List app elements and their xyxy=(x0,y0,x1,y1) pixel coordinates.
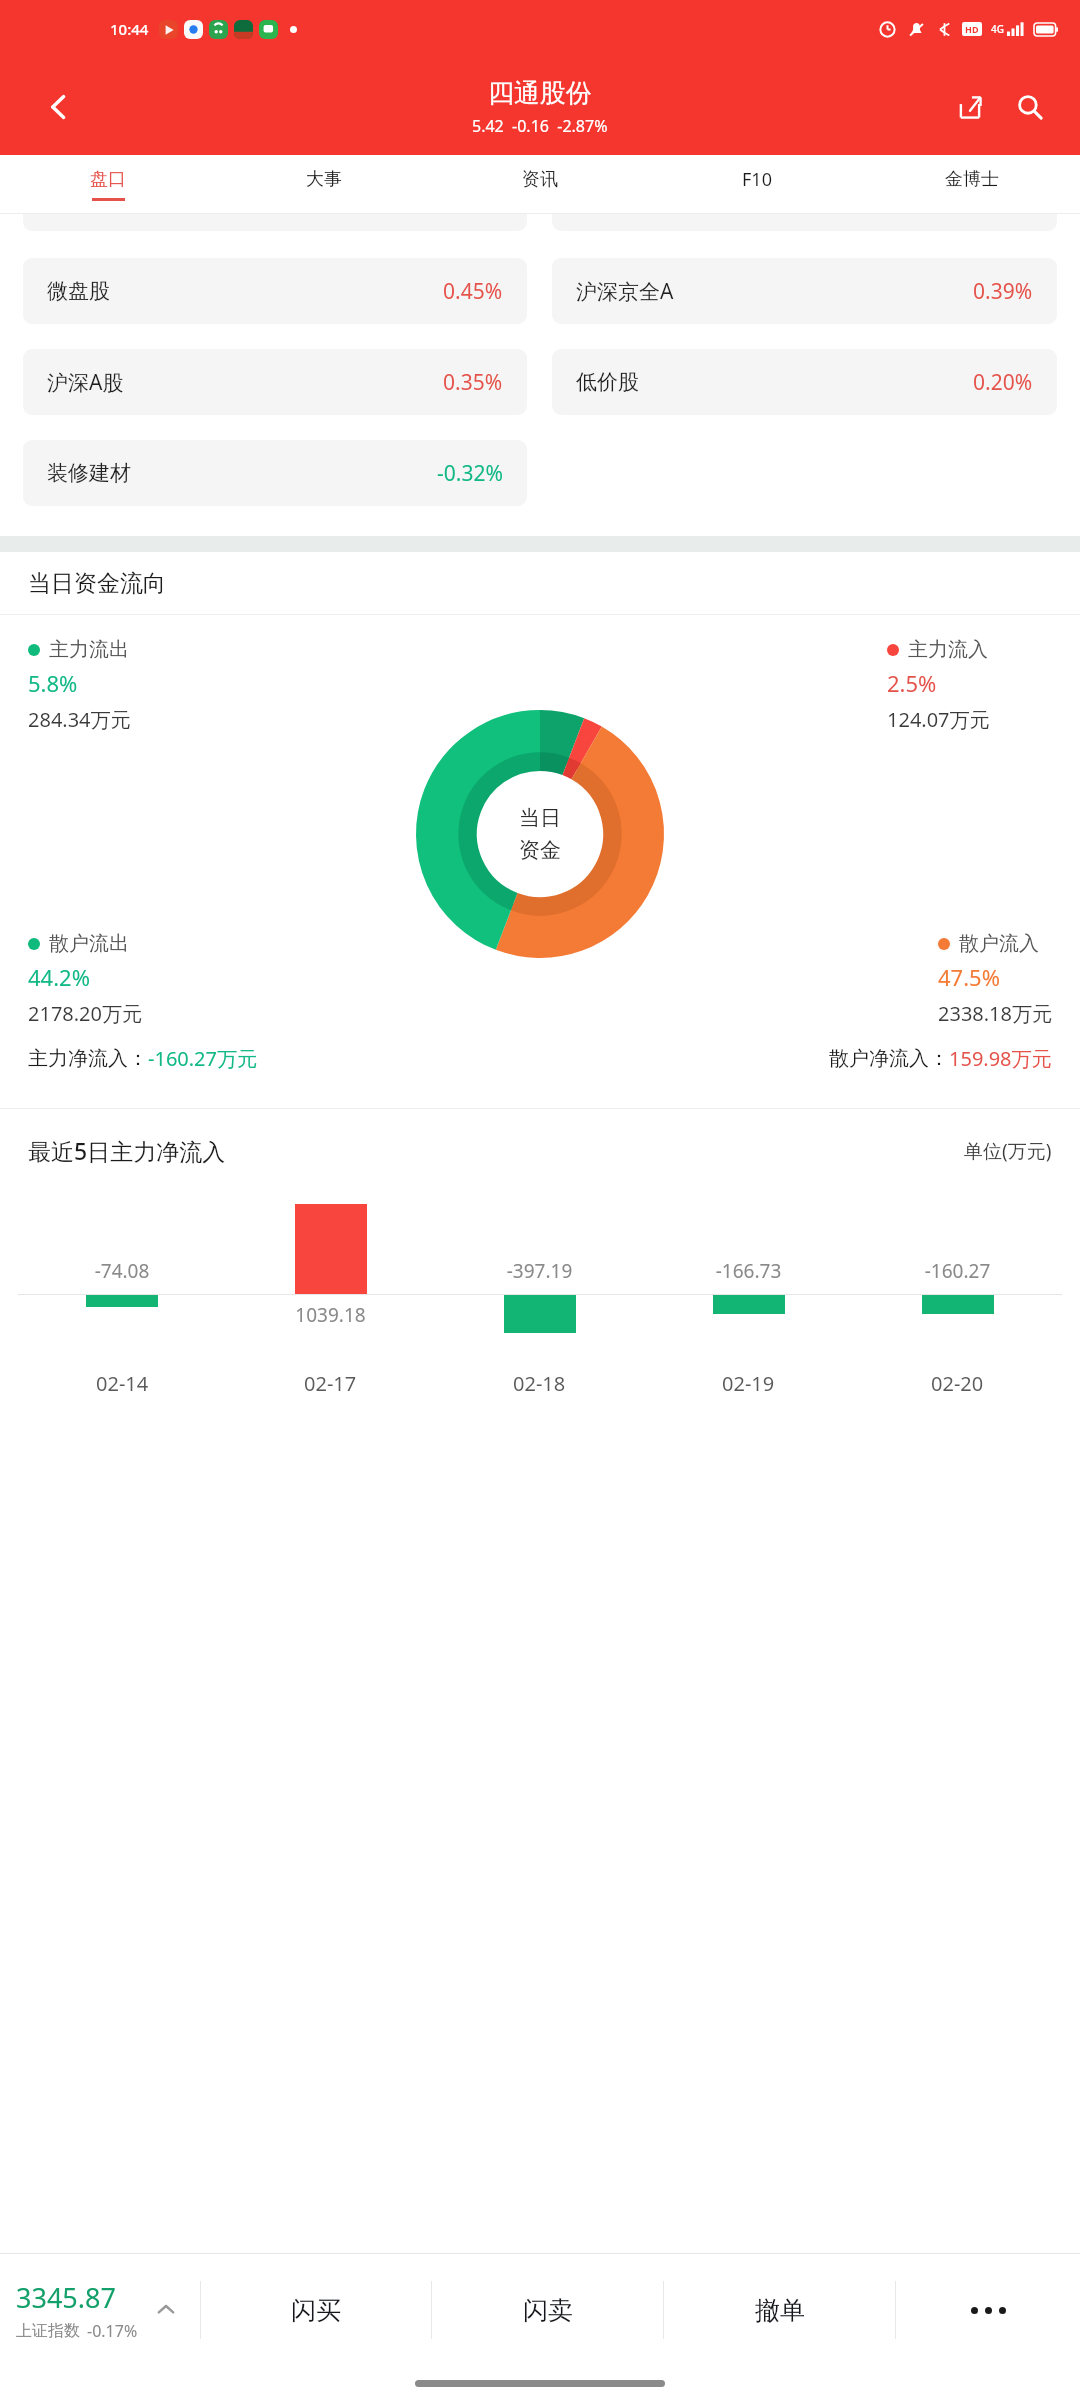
button[interactable]: 沪深A股 xyxy=(23,349,527,415)
staticText: 资讯 xyxy=(522,168,558,191)
staticText: 装修建材 xyxy=(47,460,131,486)
button[interactable]: F10 xyxy=(648,155,864,214)
button[interactable]: Search xyxy=(1006,83,1054,131)
staticText: 1039.18 xyxy=(226,1302,435,1328)
staticText: 大事 xyxy=(306,168,342,191)
staticText: 02-20 xyxy=(931,1370,984,1397)
staticText: 主力流入 xyxy=(908,637,988,662)
button[interactable]: Share xyxy=(946,83,994,131)
staticText: 散户流出 xyxy=(49,931,129,956)
staticText: 闪买 xyxy=(291,2295,341,2326)
staticText: 02-19 xyxy=(722,1370,775,1397)
staticText: 47.5% xyxy=(938,962,1000,992)
staticText: 金博士 xyxy=(945,168,999,191)
button[interactable]: 撤单 xyxy=(664,2254,895,2366)
button[interactable]: 金博士 xyxy=(864,155,1080,214)
button[interactable]: 闪买 xyxy=(201,2254,431,2366)
staticText: 单位(万元) xyxy=(964,1138,1052,1164)
button[interactable]: 微盘股 xyxy=(23,258,527,324)
staticText: 10:44 xyxy=(110,19,149,39)
staticText: 2178.20万元 xyxy=(28,1000,142,1027)
button[interactable]: 3345.87 xyxy=(0,2254,200,2366)
staticText: 284.34万元 xyxy=(28,706,131,733)
staticText: 当日 xyxy=(519,805,561,831)
staticText: 4G xyxy=(991,22,1004,36)
staticText: 资金 xyxy=(519,837,561,863)
staticText: 2.5% xyxy=(887,668,937,698)
staticText: 124.07万元 xyxy=(887,706,990,733)
staticText: -166.73 xyxy=(644,1258,853,1284)
staticText: -0.17% xyxy=(87,2320,138,2342)
button[interactable]: 沪深京全A xyxy=(552,258,1057,324)
button[interactable]: 闪卖 xyxy=(432,2254,663,2366)
staticText: -160.27 xyxy=(853,1258,1062,1284)
staticText: 上证指数 xyxy=(16,2321,80,2341)
button[interactable]: 装修建材 xyxy=(23,440,527,506)
staticText: 主力净流入： xyxy=(28,1046,148,1071)
staticText: 微盘股 xyxy=(47,278,110,304)
staticText: 44.2% xyxy=(28,962,90,992)
staticText: 02-17 xyxy=(304,1370,357,1397)
staticText: 2338.18万元 xyxy=(938,1000,1052,1027)
button[interactable]: 低价股 xyxy=(552,349,1057,415)
staticText: 沪深A股 xyxy=(47,368,124,397)
staticText: 主力流出 xyxy=(49,637,129,662)
staticText: -160.27万元 xyxy=(148,1045,257,1072)
staticText: 盘口 xyxy=(90,168,126,191)
staticText: 0.35% xyxy=(443,368,503,397)
staticText: 5.8% xyxy=(28,668,78,698)
staticText: -397.19 xyxy=(435,1258,644,1284)
staticText: 散户流入 xyxy=(959,931,1039,956)
staticText: 02-14 xyxy=(96,1370,149,1397)
button[interactable]: More xyxy=(896,2254,1080,2366)
staticText: 闪卖 xyxy=(523,2295,573,2326)
staticText: HD xyxy=(965,23,979,35)
staticText: 02-18 xyxy=(513,1370,566,1397)
staticText: 最近5日主力净流入 xyxy=(28,1135,226,1166)
staticText: -74.08 xyxy=(18,1258,226,1284)
button[interactable]: 资讯 xyxy=(432,155,648,214)
staticText: 3345.87 xyxy=(16,2279,116,2316)
staticText: 159.98万元 xyxy=(949,1045,1052,1072)
button[interactable]: 大事 xyxy=(216,155,432,214)
staticText: F10 xyxy=(742,167,772,192)
staticText: 撤单 xyxy=(755,2295,805,2326)
staticText: 低价股 xyxy=(576,369,639,395)
staticText: 0.39% xyxy=(973,277,1033,306)
staticText: 散户净流入： xyxy=(829,1046,949,1071)
button[interactable]: Back xyxy=(36,84,82,130)
staticText: 0.45% xyxy=(443,277,503,306)
staticText: 沪深京全A xyxy=(576,277,674,306)
staticText: 当日资金流向 xyxy=(28,569,166,598)
button[interactable]: 盘口 xyxy=(0,155,216,214)
staticText: 四通股份 xyxy=(488,77,592,110)
staticText: 5.42 -0.16 -2.87% xyxy=(472,115,608,137)
staticText: 0.20% xyxy=(973,368,1033,397)
staticText: -0.32% xyxy=(437,459,503,488)
